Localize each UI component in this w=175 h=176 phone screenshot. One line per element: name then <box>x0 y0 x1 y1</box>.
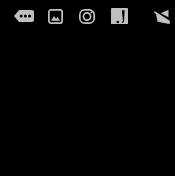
button[interactable]: Instagram <box>79 9 95 24</box>
button[interactable]: More notifications <box>14 10 34 22</box>
button[interactable]: Music player <box>111 8 128 24</box>
button[interactable]: Screenshot <box>48 9 63 24</box>
button[interactable]: Volume off <box>151 9 170 24</box>
